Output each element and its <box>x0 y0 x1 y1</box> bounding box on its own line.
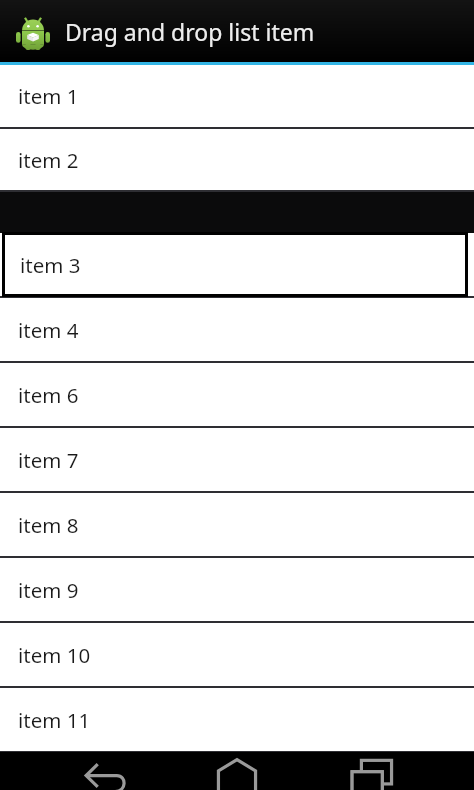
staticText: item 1 <box>18 82 79 110</box>
button[interactable]: item 3 <box>2 232 468 297</box>
staticText: item 8 <box>18 511 79 539</box>
staticText: item 11 <box>18 706 91 734</box>
button[interactable]: item 2 <box>0 129 474 190</box>
staticText: item 7 <box>18 446 79 474</box>
staticText: item 10 <box>18 641 91 669</box>
button[interactable]: item 10 <box>0 623 474 686</box>
button[interactable]: item 1 <box>0 65 474 127</box>
button[interactable]: item 8 <box>0 493 474 556</box>
button[interactable]: item 7 <box>0 428 474 491</box>
staticText: item 6 <box>18 381 79 409</box>
staticText: item 5 <box>18 251 79 279</box>
button[interactable]: item 4 <box>0 298 474 361</box>
button[interactable]: Back <box>78 752 136 790</box>
button[interactable]: item 6 <box>0 363 474 426</box>
staticText: item 9 <box>18 576 79 604</box>
staticText: item 2 <box>18 146 79 174</box>
button[interactable]: item 5 <box>0 233 474 296</box>
button[interactable]: item 9 <box>0 558 474 621</box>
button[interactable]: Home <box>208 752 266 790</box>
staticText: item 3 <box>20 251 81 279</box>
other: App icon <box>13 11 53 51</box>
staticText: Drag and drop list item <box>65 16 315 47</box>
button[interactable]: item 11 <box>0 688 474 751</box>
button[interactable]: Recent apps <box>344 752 402 790</box>
staticText: item 4 <box>18 316 79 344</box>
